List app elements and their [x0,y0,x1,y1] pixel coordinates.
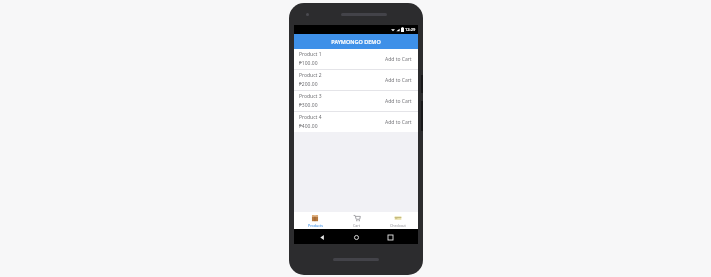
button[interactable]: Product 2 [294,70,418,91]
button[interactable]: Checkout [377,212,418,229]
staticText: Add to Cart [385,119,412,126]
staticText: Add to Cart [385,98,412,105]
button[interactable]: Products [294,212,336,229]
staticText: Product 1 [299,51,322,58]
staticText: ₱300.00 [299,102,318,109]
button[interactable]: Add to Cart [384,117,413,128]
staticText: Product 3 [299,93,322,100]
staticText: Products [308,223,323,228]
button[interactable]: Recents [384,231,396,243]
button[interactable]: Product 4 [294,112,418,132]
staticText: Product 4 [299,114,322,121]
staticText: PAYMONGO DEMO [331,38,381,45]
staticText: 12:29 [405,27,416,32]
button[interactable]: Product 3 [294,91,418,112]
button[interactable]: Add to Cart [384,54,413,65]
staticText: Add to Cart [385,77,412,84]
button[interactable]: Cart [336,212,377,229]
button[interactable]: Home [350,231,362,243]
staticText: ₱200.00 [299,81,318,88]
staticText: Checkout [390,223,406,228]
staticText: Cart [353,223,361,228]
staticText: ₱100.00 [299,60,318,67]
button[interactable]: Back [316,231,328,243]
button[interactable]: Product 1 [294,49,418,70]
button[interactable]: Add to Cart [384,75,413,86]
staticText: Product 2 [299,72,322,79]
button[interactable]: Add to Cart [384,96,413,107]
staticText: ₱400.00 [299,123,318,130]
staticText: Add to Cart [385,56,412,63]
